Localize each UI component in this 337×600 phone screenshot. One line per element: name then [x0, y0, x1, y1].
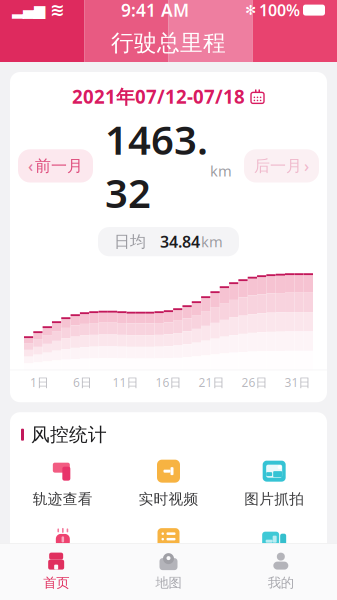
staticText: 34.84: [160, 231, 200, 252]
staticText: 11日: [112, 374, 138, 390]
staticText: ›: [304, 155, 309, 176]
staticText: 26日: [241, 374, 267, 390]
staticText: km: [201, 232, 223, 251]
staticText: 31日: [284, 374, 310, 390]
staticText: 我的: [268, 575, 294, 591]
staticText: 首页: [43, 575, 69, 591]
staticText: km: [210, 161, 232, 181]
button[interactable]: 轨迹查看: [10, 456, 116, 510]
staticText: ✻: [245, 2, 256, 18]
button[interactable]: 2021年07/12-07/18: [72, 72, 265, 113]
staticText: 100%: [259, 0, 300, 21]
staticText: 1日: [30, 374, 49, 390]
button[interactable]: 地图: [112, 551, 225, 591]
button[interactable]: 车辆警报排名: [10, 524, 116, 578]
staticText: ≋: [50, 0, 65, 20]
staticText: 行驶总里程: [111, 29, 226, 57]
button[interactable]: ‹: [18, 149, 93, 182]
staticText: 日均: [114, 232, 146, 251]
staticText: 16日: [155, 374, 181, 390]
staticText: 车辆警报排名: [18, 558, 108, 576]
button[interactable]: 后一月: [244, 149, 319, 182]
staticText: 实时视频: [138, 490, 198, 508]
staticText: 前一月: [35, 156, 83, 176]
button[interactable]: 录像回放: [221, 524, 327, 578]
button[interactable]: 警报类型列表: [116, 524, 221, 578]
staticText: 录像回放: [244, 558, 304, 576]
button[interactable]: 我的: [225, 551, 337, 591]
staticText: 2021年07/12-07/18: [72, 84, 245, 109]
staticText: ‹: [28, 155, 33, 176]
staticText: 地图: [155, 575, 181, 591]
button[interactable]: 首页: [0, 551, 112, 591]
button[interactable]: 实时视频: [116, 456, 221, 510]
staticText: 风控统计: [31, 423, 107, 446]
staticText: 轨迹查看: [33, 490, 93, 508]
staticText: 1463.32: [105, 113, 208, 219]
staticText: 警报类型列表: [123, 558, 213, 576]
staticText: 21日: [198, 374, 224, 390]
staticText: 后一月: [254, 156, 302, 176]
staticText: 6日: [73, 374, 92, 390]
staticText: ▂▄▆: [12, 2, 45, 18]
staticText: 图片抓拍: [244, 490, 304, 508]
staticText: 9:41 AM: [121, 0, 189, 22]
button[interactable]: 图片抓拍: [221, 456, 327, 510]
